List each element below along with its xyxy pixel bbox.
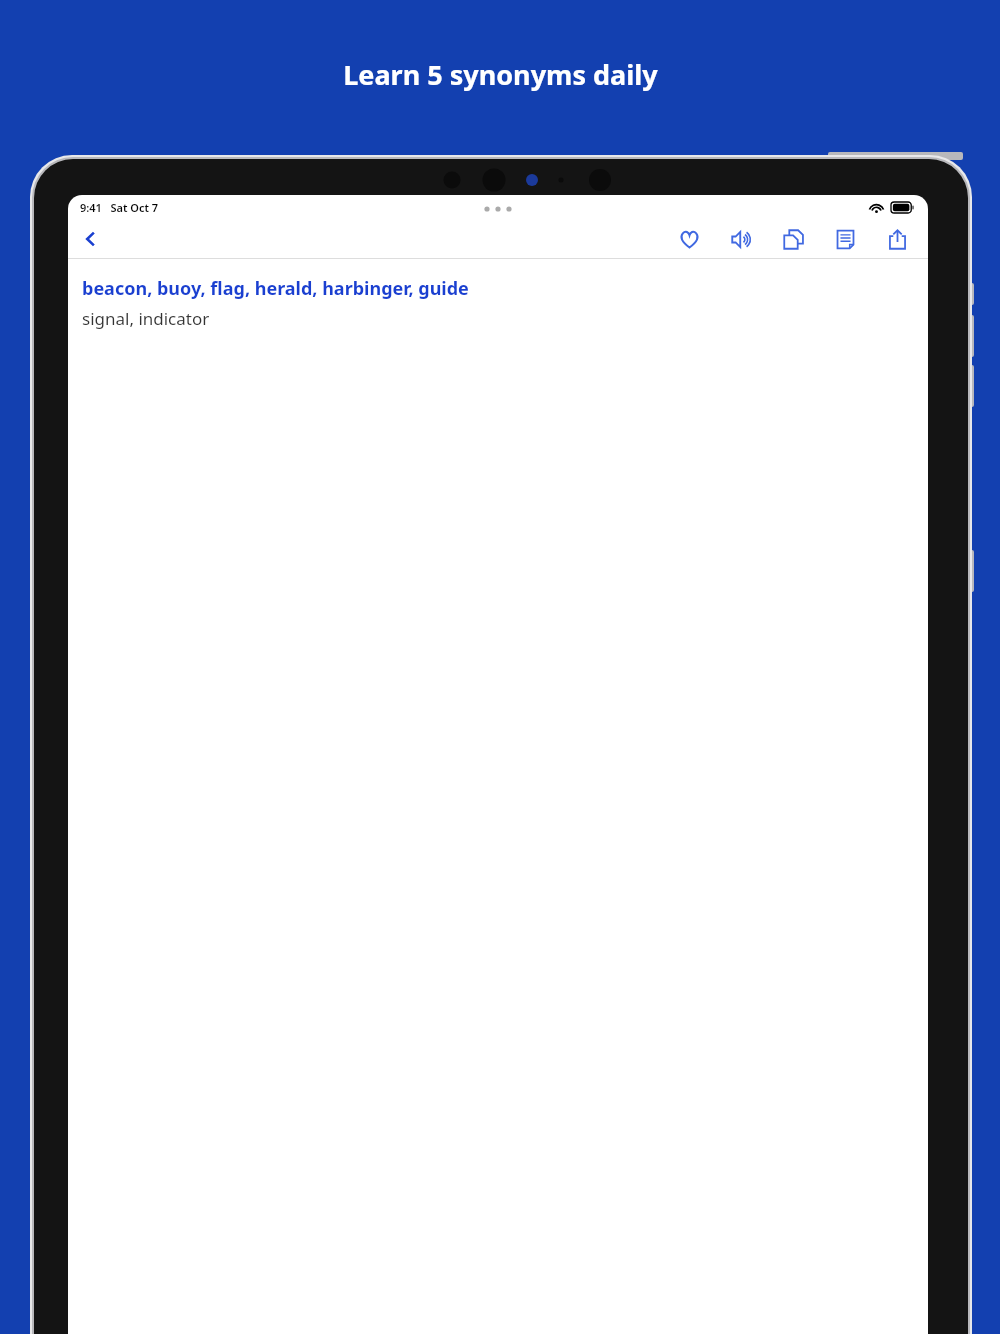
button[interactable]: Notes xyxy=(828,222,862,256)
staticText: 9:41 Sat Oct 7 xyxy=(80,200,159,215)
button[interactable]: Share xyxy=(880,222,914,256)
staticText: Learn 5 synonyms daily xyxy=(343,56,658,93)
button[interactable]: Copy xyxy=(776,222,810,256)
button[interactable]: beacon, buoy, flag, herald, harbinger, g… xyxy=(82,276,469,301)
button[interactable]: Back xyxy=(72,220,110,258)
button[interactable]: Pronounce xyxy=(724,222,758,256)
button[interactable]: Favorite xyxy=(672,222,706,256)
staticText: signal, indicator xyxy=(82,307,210,330)
